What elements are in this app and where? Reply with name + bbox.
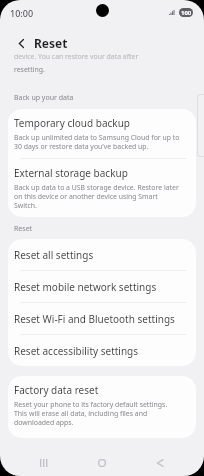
button[interactable]: Reset all settings — [8, 239, 196, 270]
staticText: External storage backup — [14, 166, 128, 180]
staticText: 10:00 — [10, 7, 34, 19]
staticText: Reset your phone to its factory default … — [14, 400, 182, 427]
button[interactable]: Back — [146, 450, 174, 476]
staticText: device. You can restore your data after — [14, 54, 139, 59]
staticText: Reset accessibility settings — [14, 344, 139, 358]
button[interactable]: External storage backup — [8, 159, 196, 217]
button[interactable]: Reset accessibility settings — [8, 335, 196, 366]
staticText: Reset mobile network settings — [14, 280, 157, 294]
staticText: Reset — [34, 35, 68, 51]
button[interactable]: Navigate up — [11, 33, 31, 53]
staticText: Factory data reset — [14, 383, 99, 397]
staticText: Reset all settings — [14, 248, 94, 262]
staticText: Temporary cloud backup — [14, 116, 131, 130]
button[interactable]: Reset Wi-Fi and Bluetooth settings — [8, 303, 196, 334]
button[interactable]: Recent apps — [30, 450, 58, 476]
staticText: Back up data to a USB storage device. Re… — [14, 183, 182, 210]
staticText: Back up your data — [14, 93, 74, 103]
staticText: 100 — [181, 9, 192, 17]
staticText: resetting. — [14, 65, 45, 74]
staticText: Reset Wi-Fi and Bluetooth settings — [14, 312, 175, 326]
staticText: Back up unlimited data to Samsung Cloud … — [14, 133, 182, 151]
button[interactable]: Home — [88, 450, 116, 476]
button[interactable]: Temporary cloud backup — [8, 109, 196, 158]
staticText: Reset — [14, 224, 33, 234]
button[interactable]: Factory data reset — [8, 376, 196, 438]
button[interactable]: Reset mobile network settings — [8, 271, 196, 302]
